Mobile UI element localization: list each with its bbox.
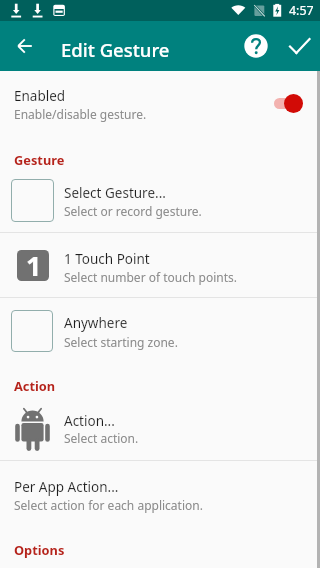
button[interactable]: Help: [232, 22, 280, 70]
staticText: Select starting zone.: [64, 334, 178, 350]
button[interactable]: [0, 233, 320, 296]
staticText: Select action for each application.: [14, 497, 203, 513]
staticText: Enable/disable gesture.: [14, 106, 147, 122]
button[interactable]: [0, 404, 320, 456]
staticText: 4:57: [289, 2, 314, 19]
staticText: Select Gesture...: [64, 184, 166, 202]
staticText: Gesture: [14, 151, 65, 168]
button[interactable]: [0, 175, 320, 228]
staticText: Select number of touch points.: [64, 269, 237, 285]
staticText: Select or record gesture.: [64, 203, 202, 219]
staticText: Enabled: [14, 87, 66, 105]
staticText: Edit Gesture: [61, 37, 170, 62]
staticText: Action...: [64, 412, 115, 430]
staticText: Options: [14, 541, 65, 558]
button[interactable]: Navigate up: [1, 22, 49, 70]
staticText: Select action.: [64, 430, 139, 446]
button[interactable]: [0, 75, 320, 131]
staticText: Per App Action...: [14, 478, 119, 496]
staticText: 1: [26, 250, 42, 278]
button[interactable]: [0, 470, 320, 520]
staticText: Anywhere: [64, 314, 128, 332]
staticText: Action: [14, 377, 56, 394]
button[interactable]: [0, 306, 320, 361]
staticText: 1 Touch Point: [64, 250, 150, 268]
button[interactable]: Save: [276, 22, 320, 70]
